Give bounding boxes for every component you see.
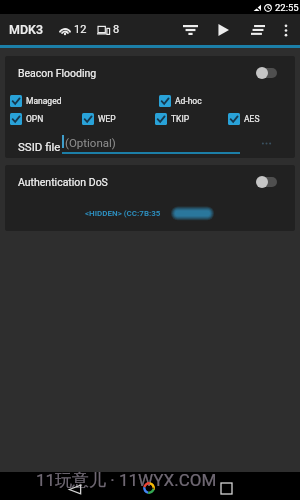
button[interactable]: Recent apps: [213, 475, 239, 500]
staticText: Ad-hoc: [175, 96, 202, 106]
button[interactable]: Authentication DoS: [5, 165, 295, 199]
staticText: <HIDDEN> (CC:7B:35: [85, 209, 161, 218]
staticText: Beacon Flooding: [18, 67, 97, 79]
button[interactable]: OPN: [10, 113, 44, 125]
button[interactable]: <HIDDEN> (CC:7B:35: [5, 205, 295, 221]
staticText: SSID file: [18, 140, 61, 153]
button[interactable]: Start attack: [213, 16, 233, 44]
button[interactable]: Home: [136, 475, 162, 500]
staticText: OPN: [26, 114, 44, 124]
button[interactable]: [256, 62, 284, 84]
button[interactable]: Back: [62, 476, 88, 500]
button[interactable]: Ad-hoc: [159, 95, 202, 107]
staticText: 11玩意儿 · 11WYX.COM: [36, 470, 217, 491]
staticText: Managed: [26, 96, 62, 106]
button[interactable]: TKIP: [155, 113, 190, 125]
button[interactable]: Beacon Flooding: [5, 56, 295, 90]
staticText: 12: [74, 23, 87, 36]
button[interactable]: [256, 171, 284, 193]
staticText: 22:55: [275, 2, 299, 13]
button[interactable]: Filter: [180, 16, 200, 44]
button[interactable]: Managed: [10, 95, 62, 107]
staticText: MDK3: [9, 22, 44, 37]
button[interactable]: More options: [276, 16, 296, 44]
staticText: AES: [244, 114, 260, 124]
staticText: (Optional): [65, 136, 116, 149]
button[interactable]: WEP: [82, 113, 116, 125]
staticText: Authentication DoS: [18, 176, 108, 188]
staticText: TKIP: [171, 114, 190, 124]
staticText: 8: [113, 23, 120, 36]
button[interactable]: (Optional): [62, 132, 240, 154]
staticText: WEP: [98, 114, 116, 124]
button[interactable]: AES: [228, 113, 260, 125]
button[interactable]: Log: [248, 16, 268, 44]
button[interactable]: Choose SSID file: [255, 132, 277, 154]
